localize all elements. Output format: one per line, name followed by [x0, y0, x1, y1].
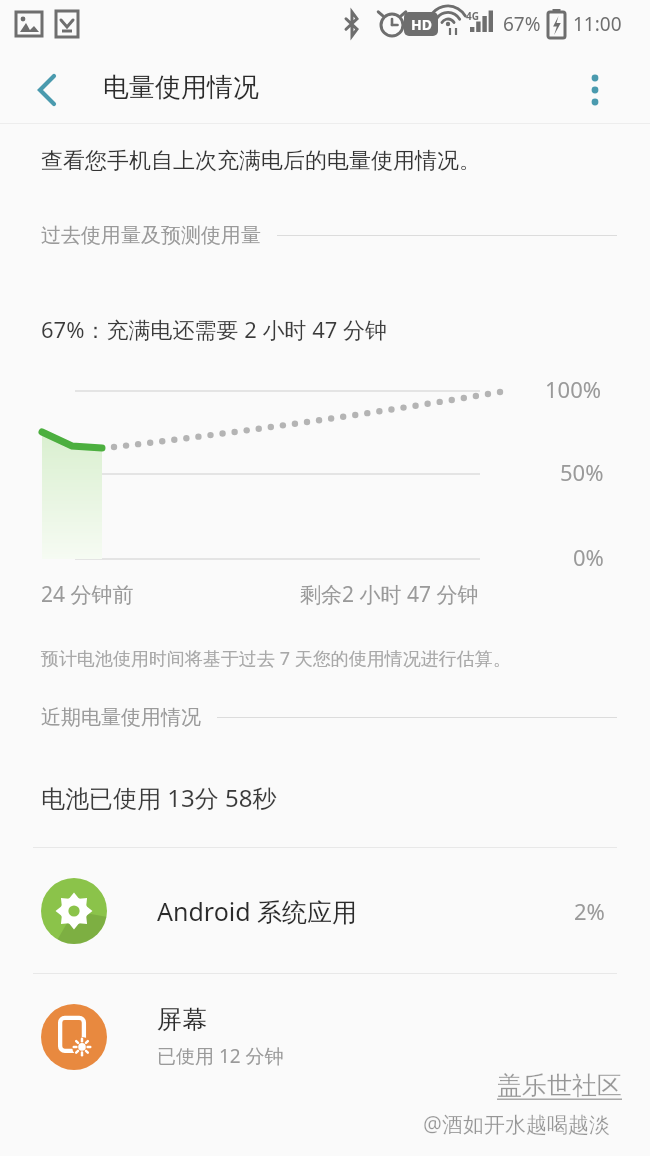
staticText: 4G: [466, 9, 479, 23]
staticText: 11:00: [573, 11, 622, 37]
staticText: HD: [411, 15, 432, 34]
button[interactable]: More options: [570, 65, 620, 115]
staticText: 24 分钟前: [41, 580, 134, 609]
staticText: 0%: [573, 542, 604, 572]
staticText: 查看您手机自上次充满电后的电量使用情况。: [41, 147, 481, 175]
button[interactable]: Android 系统应用: [0, 848, 650, 973]
staticText: 屏幕: [157, 1004, 207, 1035]
staticText: 67%：充满电还需要 2 小时 47 分钟: [41, 314, 388, 344]
staticText: 50%: [560, 457, 604, 487]
staticText: 100%: [545, 374, 602, 404]
button[interactable]: Back: [22, 65, 72, 115]
staticText: 已使用 12 分钟: [157, 1043, 284, 1069]
staticText: 67%: [503, 11, 541, 37]
staticText: 电量使用情况: [103, 71, 259, 104]
staticText: @酒如开水越喝越淡: [423, 1110, 610, 1139]
staticText: Android 系统应用: [157, 894, 358, 928]
staticText: 电池已使用 13分 58秒: [41, 781, 277, 814]
staticText: 盖乐世社区: [497, 1070, 622, 1101]
staticText: 过去使用量及预测使用量: [41, 223, 261, 248]
staticText: 2%: [574, 896, 605, 926]
button[interactable]: 屏幕: [0, 974, 650, 1099]
staticText: 剩余2 小时 47 分钟: [300, 580, 479, 609]
staticText: 近期电量使用情况: [41, 705, 201, 730]
staticText: 预计电池使用时间将基于过去 7 天您的使用情况进行估算。: [41, 646, 511, 671]
